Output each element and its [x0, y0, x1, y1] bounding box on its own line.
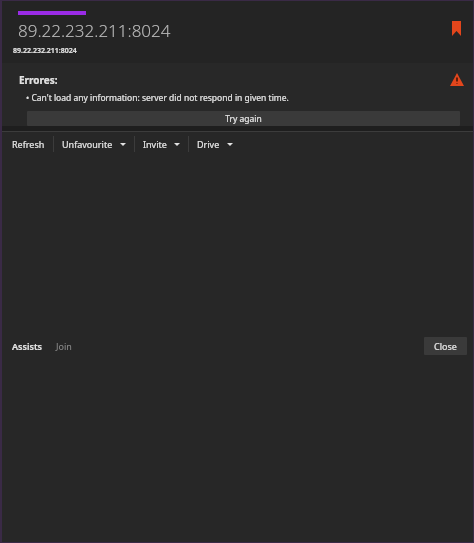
staticText: Assists: [12, 340, 42, 352]
button[interactable]: Close: [424, 337, 467, 355]
button[interactable]: Refresh: [4, 135, 53, 152]
staticText: • Can't load any information: server did…: [26, 92, 289, 104]
button[interactable]: Assists: [4, 337, 50, 355]
staticText: Join: [56, 340, 72, 352]
staticText: Errores:: [19, 73, 58, 87]
staticText: 89.22.232.211:8024: [13, 46, 77, 56]
button[interactable]: Try again: [27, 111, 460, 126]
button[interactable]: Drive: [189, 135, 241, 152]
staticText: Close: [434, 340, 457, 352]
button[interactable]: Favourite: [445, 17, 467, 39]
staticText: Try again: [225, 113, 262, 125]
staticText: Unfavourite: [62, 138, 113, 149]
button[interactable]: Join: [50, 337, 78, 355]
staticText: Invite: [143, 138, 167, 149]
staticText: 89.22.232.211:8024: [18, 19, 171, 42]
staticText: Drive: [197, 138, 220, 149]
staticText: Refresh: [12, 138, 45, 149]
button[interactable]: Invite: [135, 135, 188, 152]
button[interactable]: Warning: [446, 68, 468, 90]
button[interactable]: Unfavourite: [54, 135, 134, 152]
